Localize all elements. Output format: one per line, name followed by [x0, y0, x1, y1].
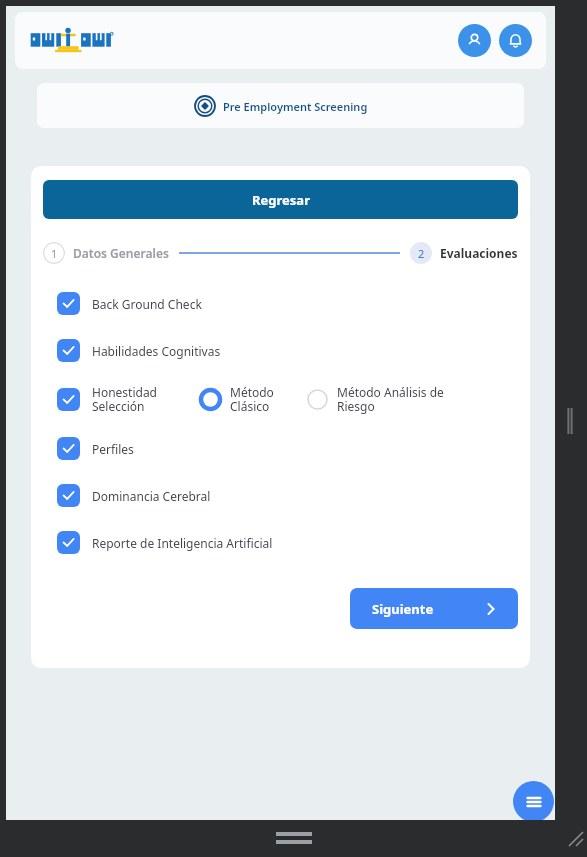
- button[interactable]: Método Clásico: [200, 384, 274, 415]
- button[interactable]: 2: [410, 242, 432, 264]
- button[interactable]: Habilidades Cognitivas: [43, 339, 518, 362]
- button[interactable]: Reporte de Inteligencia Artificial: [43, 531, 518, 554]
- staticText: Pre Employment Screening: [223, 99, 368, 114]
- button[interactable]: Back Ground Check: [43, 292, 518, 315]
- button[interactable]: Menu: [513, 781, 554, 822]
- button[interactable]: Perfiles: [43, 437, 518, 460]
- button[interactable]: Pre Employment Screening: [37, 83, 524, 128]
- staticText: Dominancia Cerebral: [92, 488, 211, 504]
- button[interactable]: Regresar: [43, 180, 518, 219]
- button[interactable]: Profile: [458, 24, 491, 57]
- button[interactable]: 1: [43, 242, 65, 264]
- staticText: Perfiles: [92, 441, 134, 457]
- staticText: Evaluaciones: [440, 245, 518, 261]
- staticText: Honestidad Selección: [92, 384, 158, 415]
- button[interactable]: Honestidad Selección: [57, 384, 158, 415]
- staticText: Habilidades Cognitivas: [92, 343, 221, 359]
- staticText: Método Clásico: [230, 384, 274, 415]
- staticText: 1: [51, 246, 58, 261]
- staticText: Back Ground Check: [92, 296, 202, 312]
- staticText: Reporte de Inteligencia Artificial: [92, 535, 273, 551]
- staticText: Método Análisis de Riesgo: [337, 384, 444, 415]
- button[interactable]: Método Análisis de Riesgo: [307, 384, 444, 415]
- staticText: Siguiente: [372, 600, 434, 618]
- button[interactable]: Dominancia Cerebral: [43, 484, 518, 507]
- staticText: Datos Generales: [73, 245, 169, 261]
- staticText: 2: [418, 246, 425, 261]
- staticText: Regresar: [252, 191, 310, 209]
- button[interactable]: Siguiente: [350, 588, 518, 629]
- button[interactable]: Notifications: [499, 24, 532, 57]
